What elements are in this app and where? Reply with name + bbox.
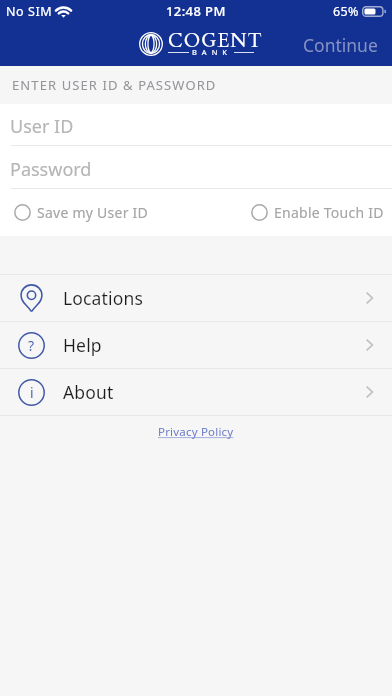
button[interactable]: Continue	[290, 29, 392, 62]
staticText: ENTER USER ID & PASSWORD	[12, 76, 217, 94]
button[interactable]: i	[0, 369, 392, 415]
staticText: Password	[10, 157, 92, 182]
button[interactable]: Enable Touch ID	[251, 203, 384, 222]
staticText: Save my User ID	[37, 203, 149, 222]
button[interactable]: Locations	[0, 275, 392, 321]
staticText: User ID	[10, 114, 74, 139]
staticText: ?	[28, 336, 35, 355]
button[interactable]: User ID	[0, 104, 392, 145]
staticText: Help	[63, 333, 102, 357]
staticText: COGENT	[168, 28, 263, 54]
staticText: No SIM	[6, 3, 53, 20]
staticText: BANK	[192, 47, 233, 57]
button[interactable]: Password	[0, 146, 392, 188]
staticText: 12:48 PM	[166, 2, 226, 20]
button[interactable]: Save my User ID	[14, 203, 149, 222]
button[interactable]: ?	[0, 322, 392, 368]
button[interactable]: Privacy Policy	[152, 421, 240, 443]
staticText: Enable Touch ID	[274, 203, 384, 222]
staticText: About	[63, 380, 114, 404]
staticText: Locations	[63, 286, 143, 310]
staticText: i	[30, 383, 34, 402]
staticText: 65%	[333, 3, 359, 20]
